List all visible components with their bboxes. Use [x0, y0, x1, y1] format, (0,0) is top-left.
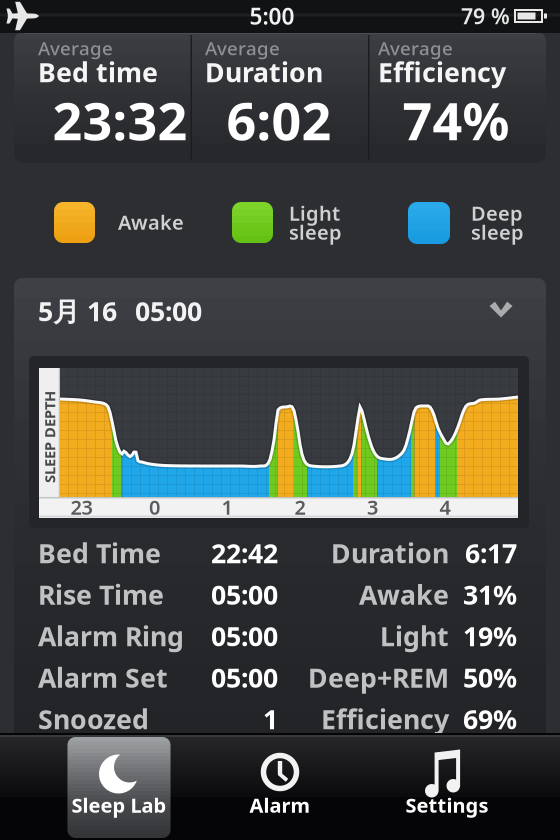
staticText: Average: [38, 36, 113, 60]
staticText: 31%: [463, 577, 517, 612]
staticText: Alarm Set: [38, 660, 168, 695]
staticText: Bed time: [38, 54, 158, 90]
staticText: Snoozed: [38, 701, 149, 737]
staticText: 05:00: [211, 577, 278, 612]
staticText: Rise Time: [38, 577, 164, 612]
staticText: 05:00: [135, 293, 202, 329]
staticText: 69%: [463, 701, 517, 737]
button[interactable]: Sleep Lab: [67, 737, 170, 838]
staticText: 6:02: [226, 85, 331, 155]
staticText: Duration: [205, 54, 323, 90]
staticText: 23:32: [52, 85, 187, 155]
staticText: Efficiency: [378, 54, 506, 90]
staticText: Light: [289, 200, 340, 226]
staticText: 79 %: [461, 2, 510, 30]
staticText: Light: [380, 618, 449, 654]
staticText: sleep: [471, 219, 524, 245]
staticText: Average: [205, 36, 280, 60]
staticText: Duration: [331, 535, 449, 571]
staticText: 23: [70, 494, 92, 520]
button[interactable]: Settings: [395, 737, 498, 838]
staticText: Awake: [359, 577, 449, 612]
staticText: 05:00: [211, 660, 278, 695]
staticText: 6:17: [465, 535, 517, 571]
button[interactable]: 5月 16: [14, 278, 546, 342]
staticText: 5月 16: [38, 293, 117, 329]
staticText: sleep: [289, 219, 342, 245]
staticText: Sleep Lab: [71, 792, 166, 818]
staticText: 05:00: [211, 618, 278, 654]
staticText: 5:00: [249, 1, 294, 31]
staticText: 22:42: [211, 535, 278, 571]
staticText: Bed Time: [38, 535, 161, 571]
staticText: Deep: [471, 200, 523, 226]
staticText: 2: [294, 494, 305, 520]
button[interactable]: Alarm: [228, 737, 331, 838]
staticText: SLEEP DEPTH: [3, 427, 95, 447]
staticText: 0: [149, 494, 160, 520]
staticText: Deep+REM: [308, 660, 449, 695]
staticText: Average: [378, 36, 453, 60]
staticText: Alarm Ring: [38, 618, 184, 654]
staticText: 4: [439, 494, 450, 520]
staticText: 3: [367, 494, 378, 520]
staticText: Alarm: [249, 792, 310, 818]
staticText: 74%: [402, 85, 509, 155]
staticText: 50%: [463, 660, 517, 695]
staticText: 1: [221, 494, 232, 520]
staticText: 19%: [463, 618, 517, 654]
staticText: Settings: [405, 792, 488, 818]
staticText: Awake: [118, 209, 184, 235]
staticText: Efficiency: [321, 701, 449, 737]
staticText: 1: [263, 701, 278, 737]
